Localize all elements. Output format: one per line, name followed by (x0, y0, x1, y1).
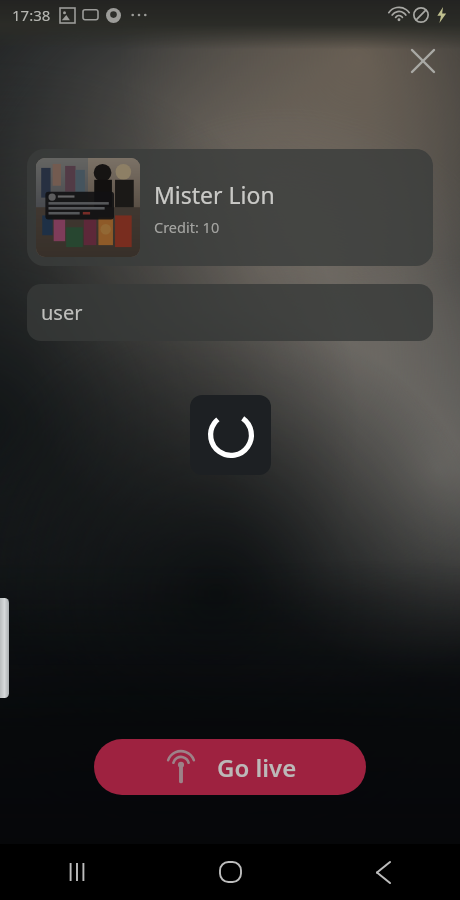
button[interactable]: user (27, 284, 433, 341)
button[interactable]: Mister Lion (27, 149, 433, 266)
button[interactable]: Broadcast (94, 739, 366, 795)
button[interactable]: Back (307, 844, 460, 900)
staticText: 17:38 (12, 5, 51, 25)
staticText: user (41, 299, 83, 326)
button[interactable]: Edge panel handle (0, 598, 9, 698)
button[interactable]: Close (400, 38, 446, 84)
staticText: Mister Lion (154, 179, 275, 210)
staticText: Go live (217, 751, 297, 784)
other: Broadcast (163, 749, 199, 785)
button[interactable]: Home (154, 844, 307, 900)
button[interactable]: Recent apps (0, 844, 154, 900)
staticText: Credit: 10 (154, 217, 220, 237)
